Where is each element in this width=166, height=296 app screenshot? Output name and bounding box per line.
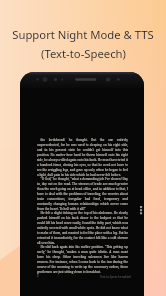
staticText: He felt a slight itching on the top of h… (37, 211, 128, 245)
staticText: He slid back again into his earlier posi… (37, 245, 128, 274)
button[interactable]: More options (139, 205, 144, 215)
button[interactable]: Night mode reader preview (20, 72, 144, 296)
staticText: the lordsbread/ he thought. But the one … (37, 138, 128, 177)
staticText: (Text-to-Speech) (41, 46, 126, 61)
staticText: Support Night Mode & TTS (12, 27, 154, 42)
staticText: Text-to-Speech enabled (100, 275, 131, 279)
staticText: 1 (37, 274, 39, 278)
staticText: "O God," he thought, "what a demanding j… (37, 177, 128, 211)
